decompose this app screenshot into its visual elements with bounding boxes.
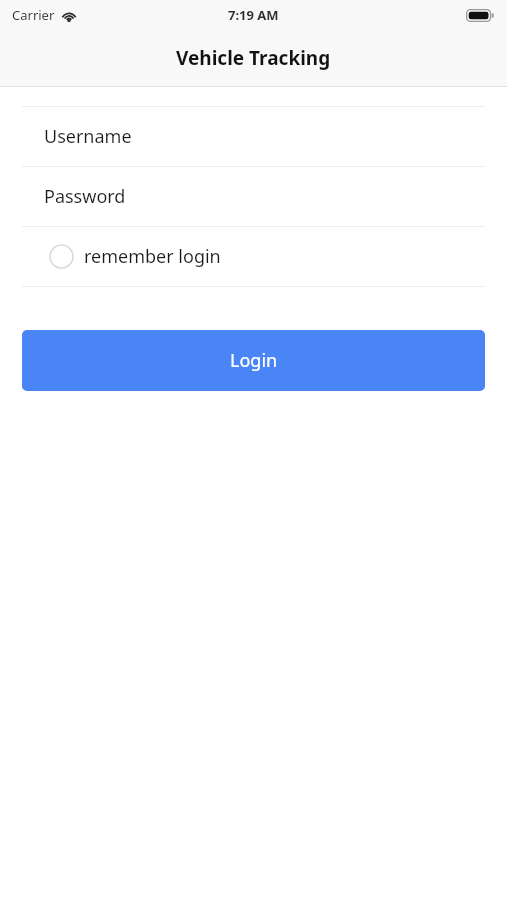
button[interactable]: Password <box>0 167 507 226</box>
staticText: Vehicle Tracking <box>176 45 331 71</box>
staticText: Password <box>44 184 126 209</box>
staticText: Login <box>230 348 278 373</box>
button[interactable]: remember login <box>0 227 507 286</box>
button[interactable]: Username <box>0 107 507 166</box>
staticText: Username <box>44 124 132 149</box>
staticText: Carrier <box>12 6 55 24</box>
staticText: remember login <box>84 244 221 269</box>
staticText: 7:19 AM <box>228 6 279 24</box>
button[interactable]: Login <box>22 330 485 391</box>
